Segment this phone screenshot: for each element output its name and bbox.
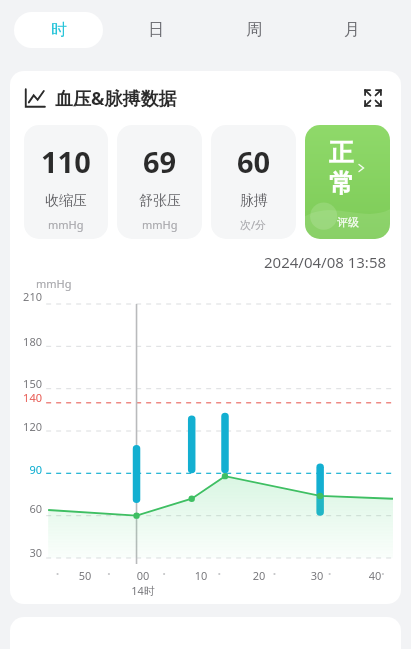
- staticText: 90: [10, 462, 42, 477]
- staticText: 正: [329, 137, 354, 168]
- staticText: 次/分: [240, 217, 267, 232]
- staticText: 180: [10, 334, 42, 349]
- staticText: 周: [246, 20, 262, 40]
- button[interactable]: 正: [305, 125, 390, 239]
- staticText: 14时: [127, 583, 159, 598]
- staticText: 69: [143, 142, 177, 181]
- staticText: 脉搏: [240, 192, 268, 210]
- staticText: 150: [10, 376, 42, 391]
- staticText: 30: [10, 545, 42, 560]
- staticText: 110: [41, 142, 91, 181]
- staticText: 210: [10, 289, 42, 304]
- button[interactable]: 周: [209, 12, 299, 48]
- staticText: 月: [344, 20, 360, 40]
- staticText: 120: [10, 419, 42, 434]
- button[interactable]: Expand chart: [359, 84, 387, 112]
- staticText: 常: [329, 168, 354, 199]
- staticText: 评级: [337, 215, 359, 229]
- button[interactable]: 60: [211, 125, 296, 239]
- staticText: mmHg: [142, 217, 178, 232]
- staticText: mmHg: [36, 276, 72, 291]
- button[interactable]: 时: [14, 12, 103, 48]
- staticText: 140: [10, 390, 42, 405]
- staticText: 00: [127, 568, 159, 583]
- staticText: 20: [243, 568, 275, 583]
- staticText: 30: [301, 568, 333, 583]
- staticText: 40: [359, 568, 391, 583]
- staticText: 日: [148, 20, 164, 40]
- staticText: 60: [237, 142, 271, 181]
- button[interactable]: 月: [307, 12, 397, 48]
- button[interactable]: 110: [24, 125, 108, 239]
- staticText: 10: [185, 568, 217, 583]
- staticText: 50: [69, 568, 101, 583]
- staticText: 收缩压: [45, 192, 87, 210]
- button[interactable]: 日: [111, 12, 201, 48]
- staticText: 血压&脉搏数据: [55, 86, 177, 111]
- staticText: 时: [51, 20, 67, 40]
- staticText: mmHg: [48, 217, 84, 232]
- button[interactable]: 69: [117, 125, 202, 239]
- staticText: 2024/04/08 13:58: [264, 252, 387, 272]
- staticText: 舒张压: [139, 192, 181, 210]
- staticText: 60: [10, 501, 42, 516]
